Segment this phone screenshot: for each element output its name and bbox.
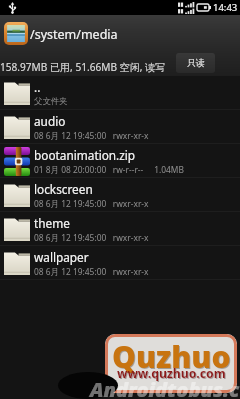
staticText: 08 6月 12 19:45:00 rwxr-xr-x [34,232,149,243]
staticText: 158.97MB 已用, 51.66MB 空闲, 读写 [0,60,166,74]
staticText: Androidtobus.com [90,376,240,399]
staticText: 父文件夹 [34,96,68,107]
staticText: .. [34,79,41,95]
staticText: theme [34,215,70,231]
button[interactable]: lockscreen [0,178,240,212]
staticText: 08 6月 12 19:45:00 rwxr-xr-x [34,130,149,141]
staticText: Quzhuo [113,337,232,378]
staticText: /system/media [30,26,118,43]
staticText: 08 6月 12 19:45:00 rwxr-xr-x [34,198,149,209]
staticText: bootanimation.zip [34,147,136,163]
staticText: lockscreen [34,181,93,197]
staticText: 只读 [187,58,205,69]
staticText: audio [34,113,66,129]
staticText: Quzhuo [112,336,231,377]
staticText: www.quzhuo.com [117,365,226,382]
button[interactable]: audio [0,110,240,144]
button[interactable]: .. [0,76,240,110]
staticText: www.quzhuo.com [118,366,227,383]
staticText: 01 8月 08 20:00:00 rw-r--r-- 1.04MB [34,164,184,175]
staticText: 14:43 [213,1,238,14]
button[interactable]: wallpaper [0,246,240,280]
staticText: 08 6月 12 19:45:00 rwxr-xr-x [34,266,149,277]
staticText: wallpaper [34,249,89,265]
button[interactable]: bootanimation.zip [0,144,240,178]
button[interactable]: 只读 [176,53,215,73]
button[interactable]: theme [0,212,240,246]
